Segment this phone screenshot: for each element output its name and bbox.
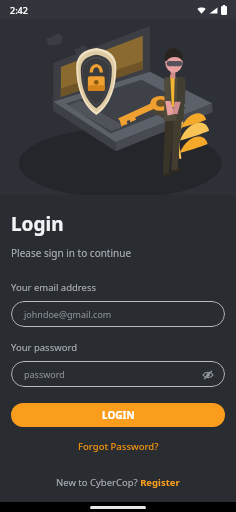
button[interactable]: LOGIN [11, 403, 225, 427]
button[interactable]: Forgot Password? [70, 438, 167, 455]
button[interactable]: New to CyberCop? Register [48, 474, 188, 491]
button[interactable]: password [11, 361, 225, 387]
staticText: 2:42 [10, 4, 28, 16]
staticText: johndoe@gmail.com [24, 308, 112, 320]
staticText: Please sign in to continue [11, 246, 132, 260]
button[interactable]: Show password [201, 368, 214, 381]
button[interactable]: Continue as a Guest [59, 508, 177, 512]
staticText: Your email address [11, 281, 97, 294]
staticText: Your password [11, 341, 77, 354]
staticText: LOGIN [102, 408, 135, 422]
button[interactable]: johndoe@gmail.com [11, 301, 225, 327]
staticText: password [24, 368, 65, 380]
staticText: Forgot Password? [78, 440, 159, 453]
staticText: Login [11, 211, 64, 237]
staticText: New to CyberCop? Register [56, 476, 180, 489]
